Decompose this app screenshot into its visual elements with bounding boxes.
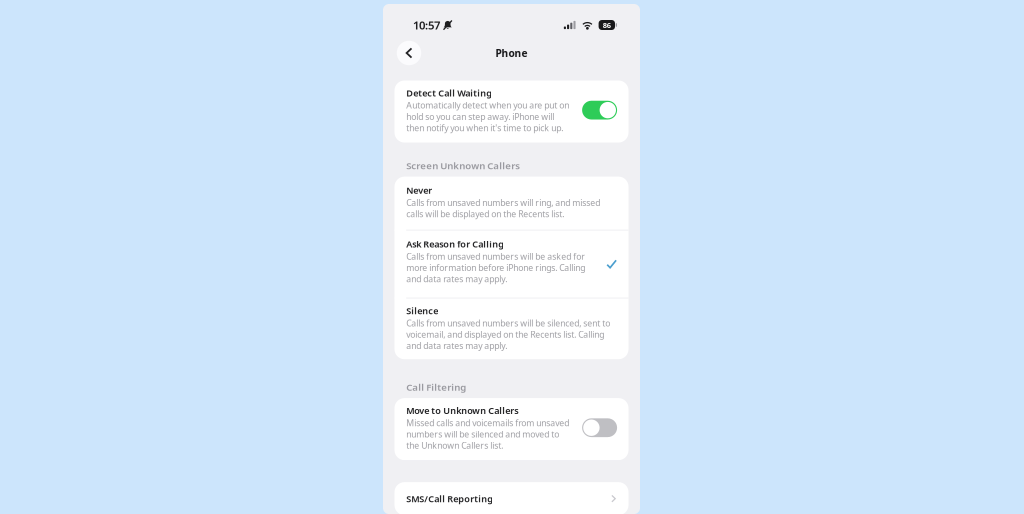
staticText: Silence: [406, 305, 438, 317]
button[interactable]: SMS/Call Reporting: [394, 482, 628, 514]
button[interactable]: Never: [394, 177, 628, 230]
staticText: Move to Unknown Callers: [406, 404, 518, 417]
staticText: 10:57: [413, 17, 440, 33]
button[interactable]: Silence: [394, 298, 628, 359]
staticText: Automatically detect when you are put on…: [406, 99, 569, 133]
staticText: Never: [406, 184, 432, 196]
button[interactable]: Back: [396, 40, 422, 66]
staticText: Phone: [495, 46, 527, 60]
staticText: 86: [603, 20, 611, 30]
staticText: Screen Unknown Callers: [406, 159, 520, 172]
staticText: Missed calls and voicemails from unsaved…: [406, 417, 569, 451]
staticText: Detect Call Waiting: [406, 87, 492, 99]
button[interactable]: Detect Call Waiting: [394, 80, 628, 142]
button[interactable]: Move to Unknown Callers: [394, 398, 628, 460]
staticText: Call Filtering: [406, 380, 466, 394]
staticText: Calls from unsaved numbers will be asked…: [406, 251, 585, 285]
staticText: SMS/Call Reporting: [406, 492, 493, 505]
staticText: Calls from unsaved numbers will be silen…: [406, 317, 610, 351]
staticText: Calls from unsaved numbers will ring, an…: [406, 197, 600, 220]
staticText: Ask Reason for Calling: [406, 238, 504, 250]
button[interactable]: Ask Reason for Calling: [394, 230, 628, 298]
